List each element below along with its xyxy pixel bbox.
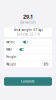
button[interactable]: Calculate bbox=[4, 77, 52, 86]
button[interactable]: Male bbox=[4, 46, 52, 53]
staticText: Body fat: 26.1 % bbox=[16, 33, 39, 36]
button[interactable]: Metric bbox=[4, 38, 52, 46]
staticText: Overweight bbox=[20, 21, 36, 24]
staticText: 29.1 bbox=[23, 13, 33, 20]
staticText: 89 bbox=[44, 63, 48, 66]
staticText: Male bbox=[6, 48, 12, 51]
staticText: Calculate bbox=[21, 80, 35, 83]
staticText: Weight bbox=[6, 63, 16, 66]
staticText: Metric bbox=[6, 40, 14, 44]
staticText: Ideal weight: 67 kgs bbox=[13, 28, 42, 32]
staticText: Height bbox=[6, 55, 16, 59]
